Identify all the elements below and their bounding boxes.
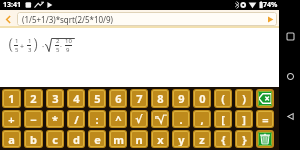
button[interactable]: /: [68, 111, 84, 127]
button[interactable]: e: [89, 131, 105, 147]
button[interactable]: Back: [280, 106, 300, 126]
staticText: 2: [56, 37, 60, 45]
button[interactable]: 6: [110, 90, 126, 107]
staticText: *: [52, 112, 58, 127]
button[interactable]: Clear all: [258, 132, 272, 146]
staticText: 1: [8, 91, 15, 106]
staticText: 13:41: [3, 0, 21, 10]
button[interactable]: 0: [194, 90, 210, 107]
staticText: m: [113, 132, 124, 147]
staticText: 1: [15, 37, 19, 45]
staticText: 9: [66, 46, 70, 54]
staticText: 9: [178, 91, 185, 106]
button[interactable]: ,: [194, 111, 210, 127]
button[interactable]: :: [89, 111, 105, 127]
button[interactable]: .: [173, 111, 189, 127]
button[interactable]: √: [131, 111, 147, 127]
button[interactable]: (1/5+1/3)*sqrt(2/5*10/9): [17, 12, 277, 26]
staticText: {: [221, 132, 226, 147]
staticText: √: [135, 113, 143, 126]
button[interactable]: a: [3, 131, 20, 147]
staticText: 10: [65, 37, 72, 45]
staticText: 2: [30, 91, 37, 106]
button[interactable]: ]: [236, 111, 252, 127]
button[interactable]: Recents: [280, 26, 300, 46]
button[interactable]: }: [236, 131, 252, 147]
staticText: =: [262, 112, 269, 127]
button[interactable]: 7: [131, 90, 147, 107]
button[interactable]: [: [215, 111, 231, 127]
button[interactable]: *: [47, 111, 63, 127]
button[interactable]: m: [110, 131, 126, 147]
button[interactable]: {: [215, 131, 231, 147]
staticText: −: [30, 112, 37, 127]
button[interactable]: n: [131, 131, 147, 147]
button[interactable]: ^: [110, 111, 126, 127]
button[interactable]: 4: [68, 90, 84, 107]
staticText: n: [155, 113, 159, 121]
button[interactable]: n: [152, 111, 168, 127]
staticText: ]: [242, 112, 246, 127]
staticText: .: [179, 112, 183, 127]
staticText: 5: [94, 91, 101, 106]
staticText: +: [8, 112, 15, 127]
button[interactable]: z: [194, 131, 210, 147]
button[interactable]: 9: [173, 90, 189, 107]
staticText: 0: [199, 91, 206, 106]
staticText: y: [178, 132, 185, 147]
button[interactable]: Backspace: [258, 91, 272, 106]
button[interactable]: c: [47, 131, 63, 147]
staticText: ): [242, 91, 246, 106]
staticText: 6: [115, 91, 122, 106]
staticText: a: [8, 132, 15, 147]
staticText: 74%: [263, 0, 278, 10]
staticText: }: [242, 132, 247, 147]
button[interactable]: 8: [152, 90, 168, 107]
button[interactable]: +: [3, 111, 20, 127]
staticText: x: [157, 132, 164, 147]
button[interactable]: x: [152, 131, 168, 147]
staticText: 7: [136, 91, 143, 106]
button[interactable]: b: [25, 131, 42, 147]
staticText: ^: [115, 112, 122, 127]
button[interactable]: =: [257, 111, 273, 127]
staticText: b: [30, 132, 37, 147]
button[interactable]: Back: [0, 10, 17, 28]
staticText: :: [95, 112, 99, 127]
staticText: ,: [200, 112, 204, 127]
button[interactable]: 2: [25, 90, 42, 107]
button[interactable]: Home: [280, 66, 300, 86]
button[interactable]: 3: [47, 90, 63, 107]
staticText: 8: [157, 91, 164, 106]
staticText: e: [94, 132, 101, 147]
button[interactable]: (: [215, 90, 231, 107]
button[interactable]: y: [173, 131, 189, 147]
staticText: 3: [28, 46, 32, 54]
button[interactable]: −: [25, 111, 42, 127]
staticText: 5: [56, 46, 60, 54]
button[interactable]: ): [236, 90, 252, 107]
staticText: n: [135, 132, 143, 147]
staticText: /: [74, 112, 79, 127]
staticText: +: [20, 42, 25, 52]
button[interactable]: 5: [89, 90, 105, 107]
staticText: ·: [42, 41, 45, 52]
staticText: (1/5+1/3)*sqrt(2/5*10/9): [22, 14, 114, 25]
staticText: 3: [52, 91, 59, 106]
staticText: z: [199, 132, 205, 147]
staticText: c: [52, 132, 58, 147]
button[interactable]: d: [68, 131, 84, 147]
staticText: 5: [15, 46, 19, 54]
staticText: [: [221, 112, 225, 127]
staticText: 1: [28, 37, 32, 45]
button[interactable]: Evaluate: [264, 12, 277, 26]
staticText: d: [73, 132, 80, 147]
staticText: (: [221, 91, 225, 106]
staticText: ·: [60, 42, 62, 52]
button[interactable]: 1: [3, 90, 20, 107]
staticText: 4: [73, 91, 80, 106]
